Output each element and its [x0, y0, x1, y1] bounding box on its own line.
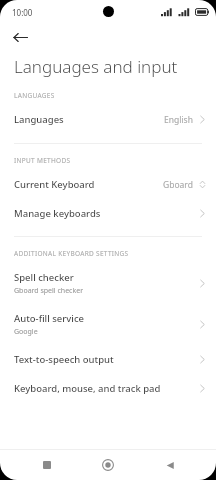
- button[interactable]: Languages: [0, 105, 216, 134]
- staticText: Auto-fill service: [14, 312, 84, 325]
- button[interactable]: Keyboard, mouse, and track pad: [0, 374, 216, 403]
- staticText: 10:00: [12, 7, 33, 18]
- button[interactable]: Current Keyboard: [0, 170, 216, 199]
- staticText: Google: [14, 327, 38, 337]
- button[interactable]: Recent apps: [32, 450, 62, 480]
- staticText: Gboard spell checker: [14, 286, 84, 296]
- button[interactable]: Spell checker: [0, 263, 216, 304]
- button[interactable]: Back: [7, 24, 33, 50]
- staticText: Current Keyboard: [14, 178, 95, 191]
- staticText: INPUT METHODS: [14, 156, 71, 165]
- staticText: Spell checker: [14, 271, 74, 284]
- staticText: Languages and input: [14, 55, 178, 78]
- staticText: Keyboard, mouse, and track pad: [14, 382, 161, 395]
- staticText: Gboard: [163, 179, 193, 191]
- button[interactable]: Back: [155, 450, 185, 480]
- button[interactable]: Manage keyboards: [0, 199, 216, 228]
- staticText: Text-to-speech output: [14, 353, 114, 366]
- staticText: ADDITIONAL KEYBOARD SETTINGS: [14, 249, 129, 258]
- staticText: Languages: [14, 113, 64, 126]
- staticText: English: [164, 114, 193, 126]
- button[interactable]: Text-to-speech output: [0, 345, 216, 374]
- button[interactable]: Auto-fill service: [0, 304, 216, 345]
- staticText: LANGUAGES: [14, 91, 55, 100]
- staticText: Manage keyboards: [14, 207, 101, 220]
- button[interactable]: Home: [93, 450, 123, 480]
